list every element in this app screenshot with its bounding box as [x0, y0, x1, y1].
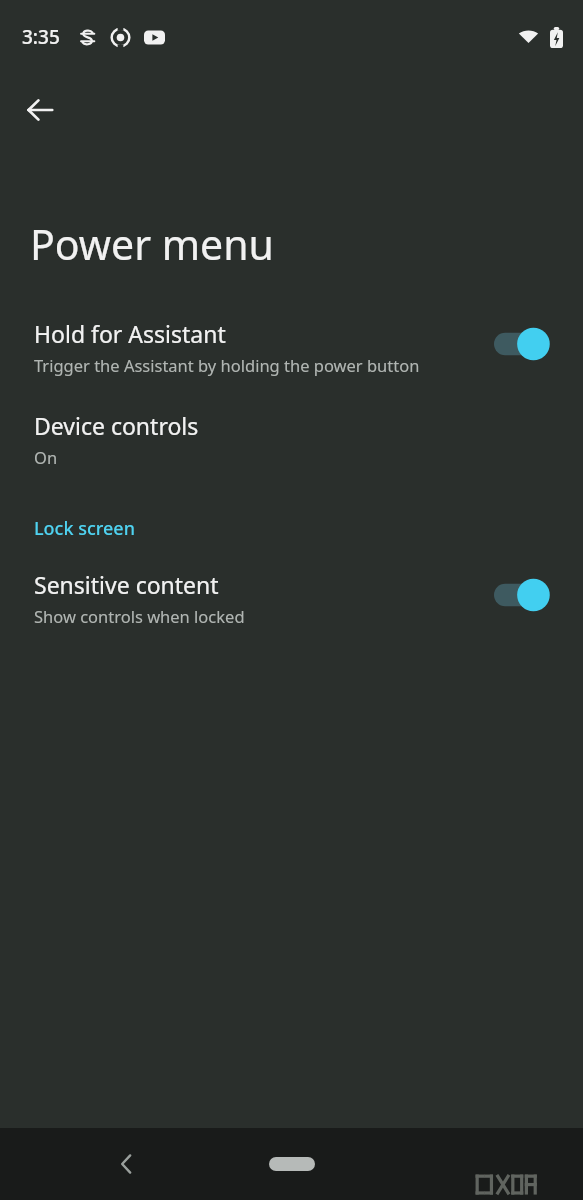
staticText: On — [34, 446, 58, 468]
staticText: Show controls when locked — [34, 605, 245, 627]
staticText: 3:35 — [22, 24, 60, 50]
button[interactable]: Home — [256, 1146, 328, 1182]
staticText: Device controls — [34, 410, 199, 441]
button[interactable]: Device controls — [0, 406, 583, 472]
staticText: Sensitive content — [34, 569, 219, 600]
staticText: Trigger the Assistant by holding the pow… — [34, 354, 420, 376]
staticText: Power menu — [30, 216, 274, 272]
staticText: Lock screen — [34, 516, 135, 541]
button[interactable]: Hold for Assistant — [0, 314, 583, 380]
button[interactable]: Hold for Assistant toggle — [491, 324, 557, 364]
button[interactable]: Sensitive content — [0, 565, 583, 631]
button[interactable]: Sensitive content toggle — [491, 575, 557, 615]
staticText: Hold for Assistant — [34, 318, 226, 349]
button[interactable]: Back — [16, 86, 64, 134]
button[interactable]: Back — [104, 1142, 148, 1186]
